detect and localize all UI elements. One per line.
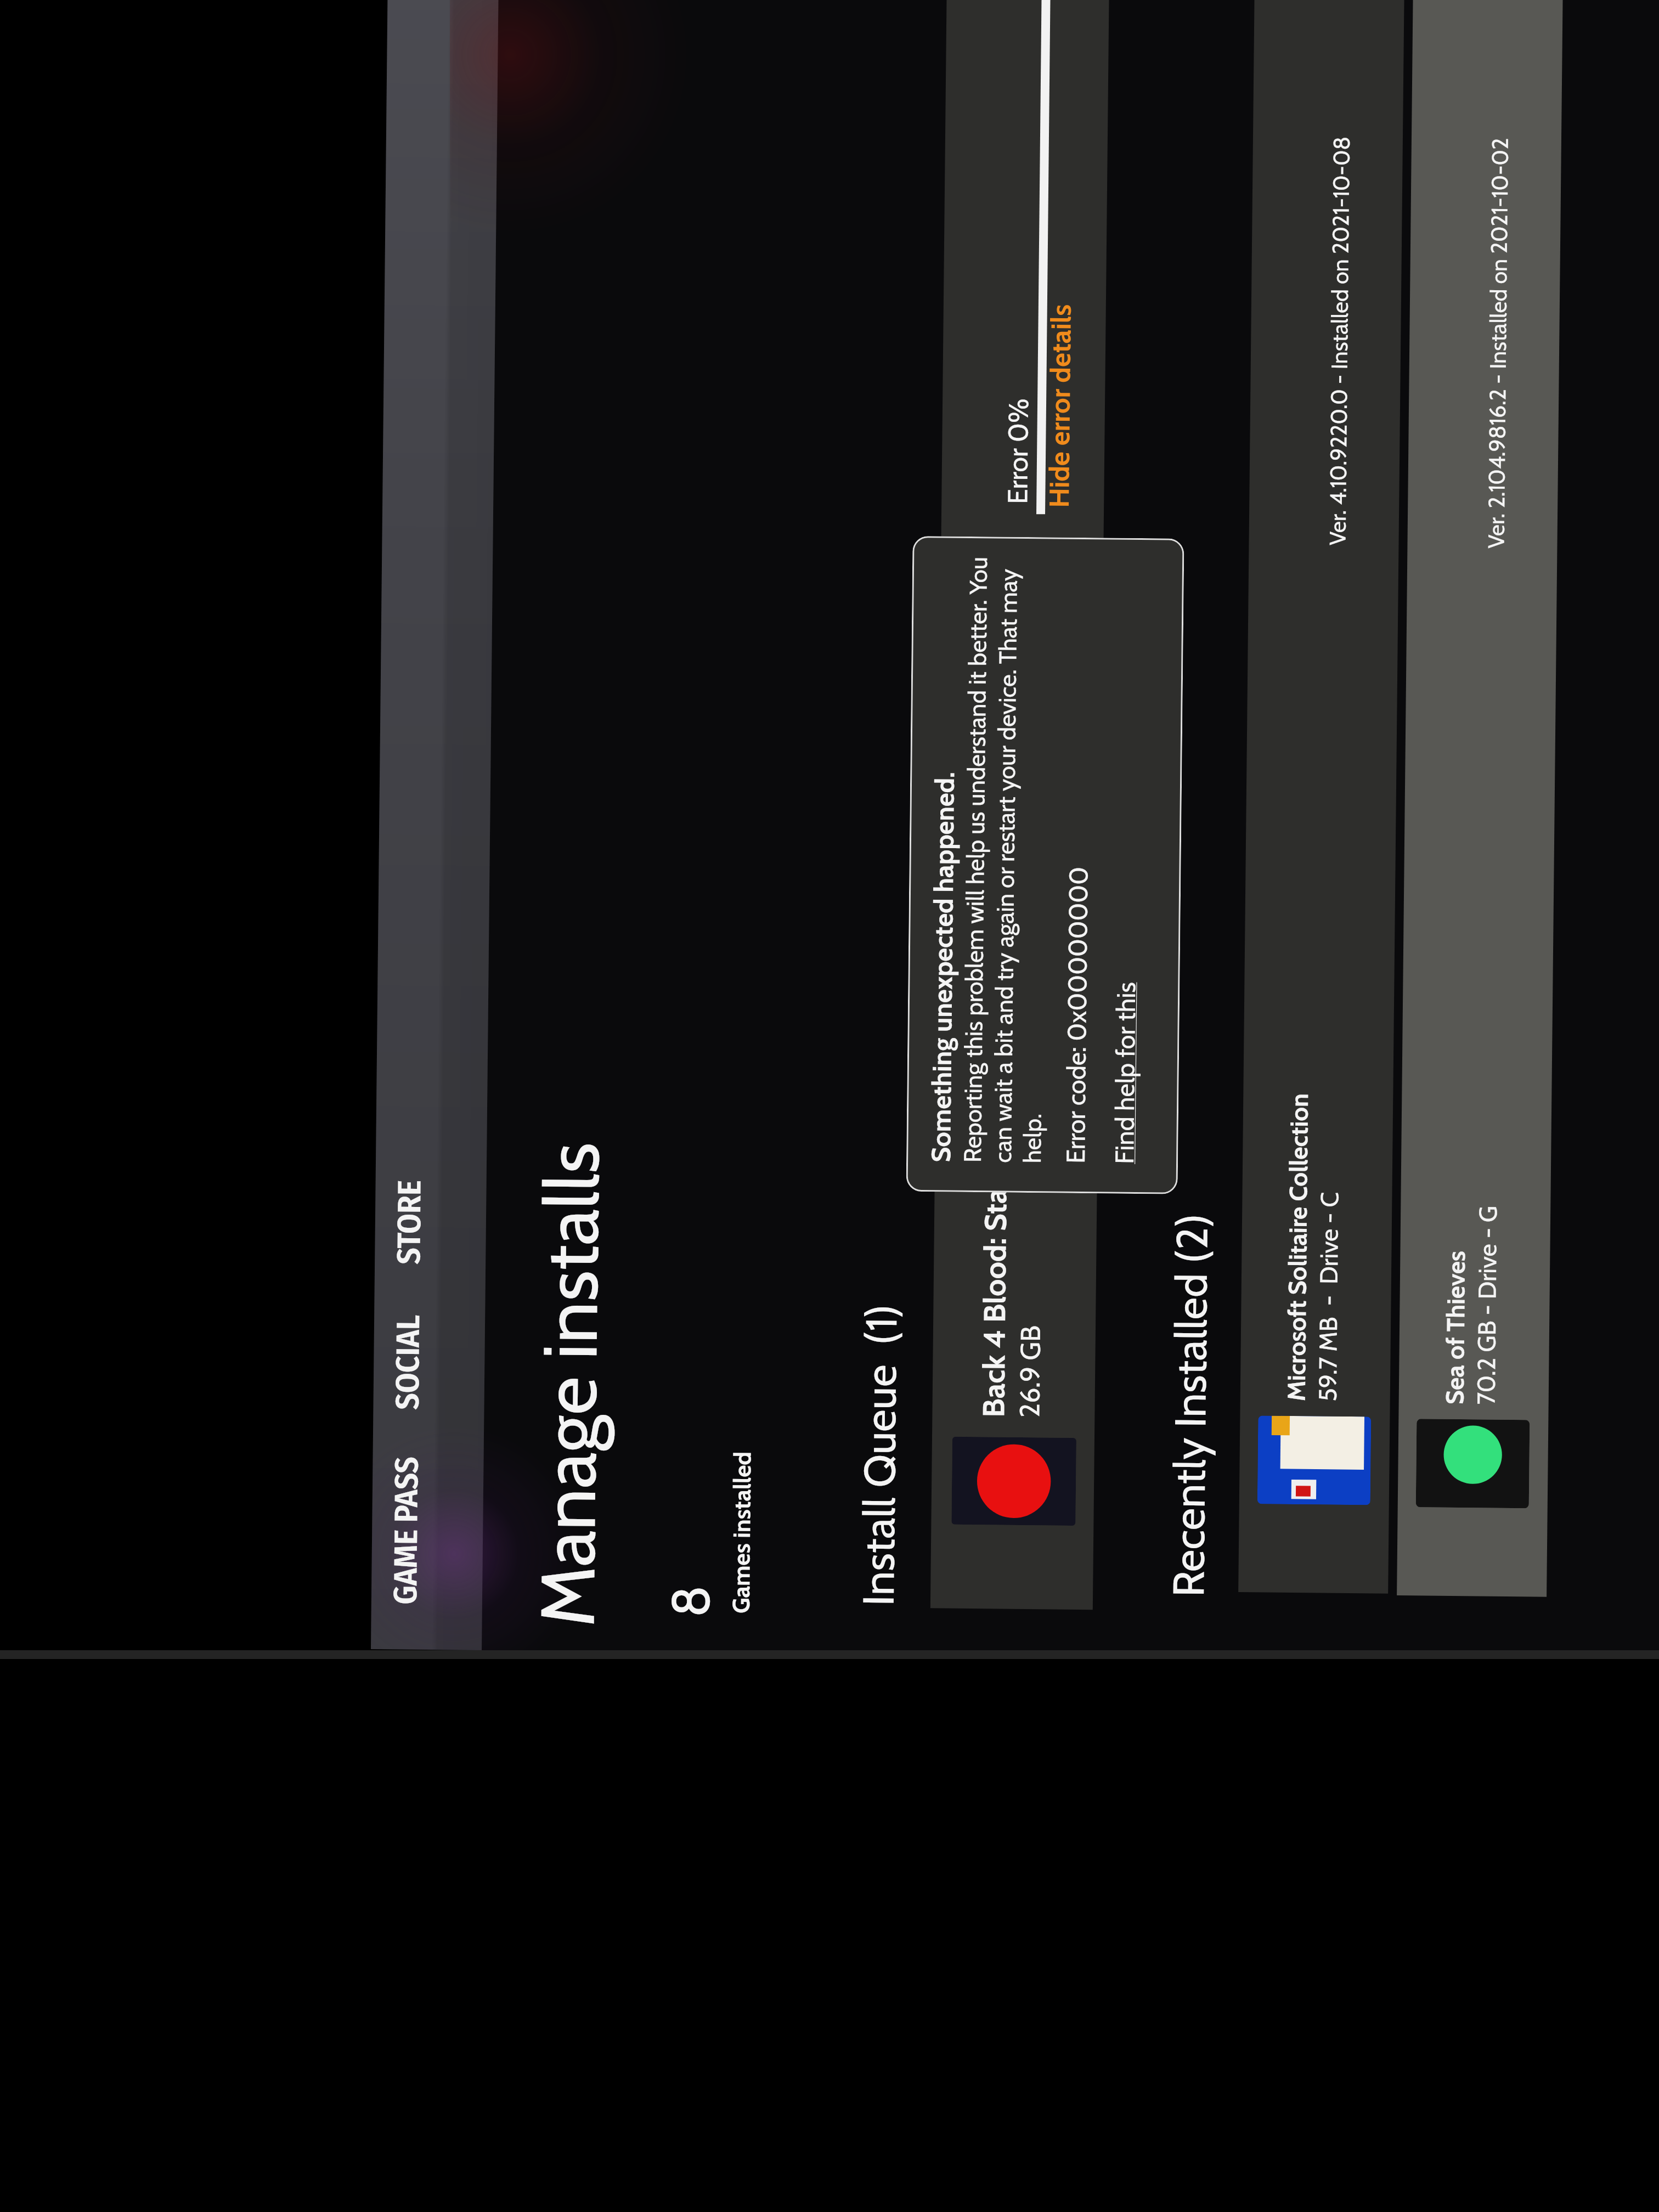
staticText: Error code: 0x00000000	[1060, 867, 1094, 1164]
button[interactable]: Sea of Thieves	[1397, 0, 1565, 1597]
button[interactable]: Microsoft Solitaire Collection	[1238, 0, 1407, 1594]
button[interactable]: GAME PASS	[386, 1456, 427, 1605]
staticText: Error 0%	[1001, 398, 1035, 504]
staticText: Ver. 2.104.9816.2 - Installed on 2021-10…	[1482, 137, 1514, 549]
staticText: Games installed	[727, 1451, 757, 1614]
staticText: Reporting this problem will help us unde…	[958, 545, 1053, 1163]
button[interactable]: Hide error details	[1042, 304, 1078, 508]
staticText: Microsoft Solitaire Collection	[1281, 1093, 1315, 1401]
staticText: SOCIAL	[388, 1315, 428, 1410]
staticText: Hide error details	[1042, 304, 1078, 508]
button[interactable]: Find help for this	[1109, 982, 1142, 1164]
staticText: 26.9 GB	[1013, 1325, 1047, 1418]
staticText: Find help for this	[1109, 982, 1142, 1164]
staticText: Ver. 4.10.9220.0 - Installed on 2021-10-…	[1324, 136, 1355, 545]
staticText: STORE	[390, 1180, 429, 1265]
staticText: Something unexpected happened.	[925, 771, 961, 1162]
staticText: 70.2 GB - Drive - G	[1471, 1205, 1503, 1405]
staticText: Recently Installed (2)	[1162, 1213, 1219, 1597]
button[interactable]: Back 4 Blood: Standard Edition	[930, 0, 1112, 1610]
button[interactable]: SOCIAL	[388, 1315, 428, 1410]
staticText: GAME PASS	[386, 1456, 427, 1605]
staticText: 59.7 MB - Drive - C	[1313, 1192, 1345, 1402]
button[interactable]: STORE	[390, 1180, 429, 1265]
staticText: Back 4 Blood: Standard Edition	[975, 1013, 1016, 1418]
staticText: Manage installs	[521, 1142, 617, 1627]
staticText: Sea of Thieves	[1440, 1251, 1472, 1405]
staticText: 8	[658, 1585, 723, 1618]
staticText: Install Queue (1)	[852, 1304, 908, 1606]
